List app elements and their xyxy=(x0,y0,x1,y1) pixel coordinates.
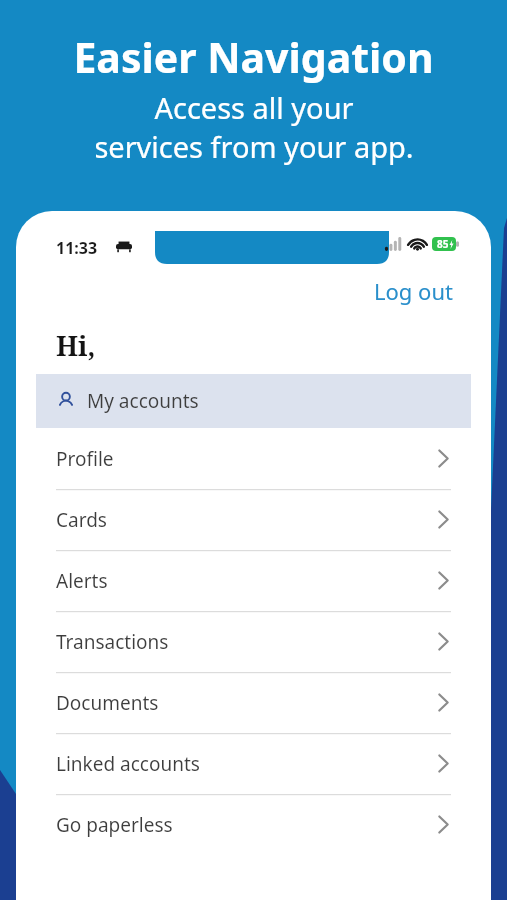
staticText: Linked accounts xyxy=(56,751,200,777)
staticText: 85 xyxy=(437,237,449,251)
button[interactable]: Transactions xyxy=(36,611,471,672)
button[interactable]: Go paperless xyxy=(36,794,471,855)
button[interactable]: Linked accounts xyxy=(36,733,471,794)
button[interactable]: Log out xyxy=(356,270,471,312)
button[interactable]: Cards xyxy=(36,489,471,550)
staticText: My accounts xyxy=(87,388,199,414)
button[interactable]: Documents xyxy=(36,672,471,733)
button[interactable]: Alerts xyxy=(36,550,471,611)
staticText: Documents xyxy=(56,690,159,716)
staticText: Transactions xyxy=(56,629,169,655)
staticText: Profile xyxy=(56,446,114,472)
staticText: Alerts xyxy=(56,568,108,594)
staticText: Easier Navigation xyxy=(73,29,434,85)
staticText: Access all your services from your app. xyxy=(94,88,414,166)
staticText: Hi, xyxy=(56,327,96,364)
button[interactable]: My accounts xyxy=(36,374,471,428)
staticText: Go paperless xyxy=(56,812,173,838)
staticText: Log out xyxy=(374,276,453,306)
button[interactable]: Profile xyxy=(36,428,471,489)
staticText: 11:33 xyxy=(56,237,98,259)
staticText: Cards xyxy=(56,507,107,533)
